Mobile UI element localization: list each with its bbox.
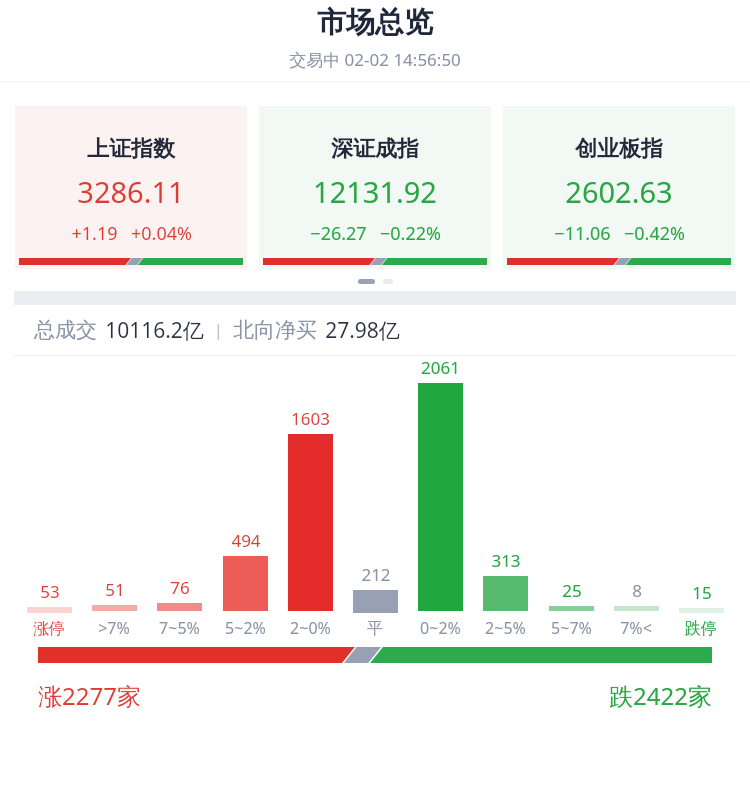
button[interactable]: 494 [214,356,276,639]
staticText: 27.98亿 [325,316,400,345]
button[interactable]: 53 [18,358,80,639]
button[interactable]: Page 2 [383,279,393,284]
staticText: +1.19 [71,221,118,246]
staticText: −11.06 [554,221,611,246]
staticText: 12131.92 [313,172,437,211]
staticText: 25 [562,579,582,602]
button[interactable]: 8 [605,356,667,639]
staticText: 2~5% [485,617,526,639]
staticText: −0.22% [380,221,441,246]
staticText: | [214,319,223,341]
button[interactable]: 1603 [279,356,341,639]
staticText: 2602.63 [565,172,673,211]
staticText: 7%< [620,617,652,639]
staticText: +0.04% [131,221,192,246]
staticText: 15 [692,581,712,604]
staticText: 2~0% [290,617,331,639]
button[interactable]: 212 [344,358,406,639]
staticText: 51 [105,578,125,601]
staticText: 3286.11 [77,172,185,211]
staticText: 7~5% [159,617,200,639]
staticText: 平 [367,619,383,639]
staticText: 0~2% [420,617,461,639]
button[interactable]: 51 [83,356,145,639]
staticText: 10116.2亿 [105,316,204,345]
button[interactable]: 上证指数 [15,106,247,269]
staticText: 5~2% [225,617,266,639]
staticText: 494 [231,529,261,552]
button[interactable]: 深证成指 [259,106,491,269]
staticText: 313 [491,549,521,572]
button[interactable]: 2061 [409,356,471,639]
staticText: 深证成指 [331,135,419,163]
staticText: 212 [361,563,391,586]
staticText: 总成交 [34,317,97,343]
staticText: 涨2277家 [38,679,141,712]
staticText: 8 [632,579,642,602]
staticText: 跌停 [685,619,717,639]
button[interactable]: 15 [670,358,732,639]
staticText: 交易中 02-02 14:56:50 [0,48,750,71]
staticText: 53 [40,580,60,603]
staticText: 涨停 [33,619,65,639]
staticText: 跌2422家 [609,679,712,712]
staticText: 上证指数 [87,135,175,163]
staticText: 5~7% [551,617,592,639]
staticText: −0.42% [624,221,685,246]
button[interactable]: 25 [540,356,602,639]
staticText: 2061 [421,356,460,379]
staticText: 北向净买 [233,317,317,343]
staticText: 市场总览 [0,4,750,41]
staticText: 76 [170,576,190,599]
staticText: 创业板指 [575,135,663,163]
button[interactable]: 313 [474,356,536,639]
button[interactable]: Page 1 [358,279,375,284]
button[interactable]: 创业板指 [503,106,735,269]
staticText: −26.27 [310,221,367,246]
staticText: 1603 [291,407,330,430]
staticText: >7% [98,617,130,639]
button[interactable]: 76 [148,356,210,639]
